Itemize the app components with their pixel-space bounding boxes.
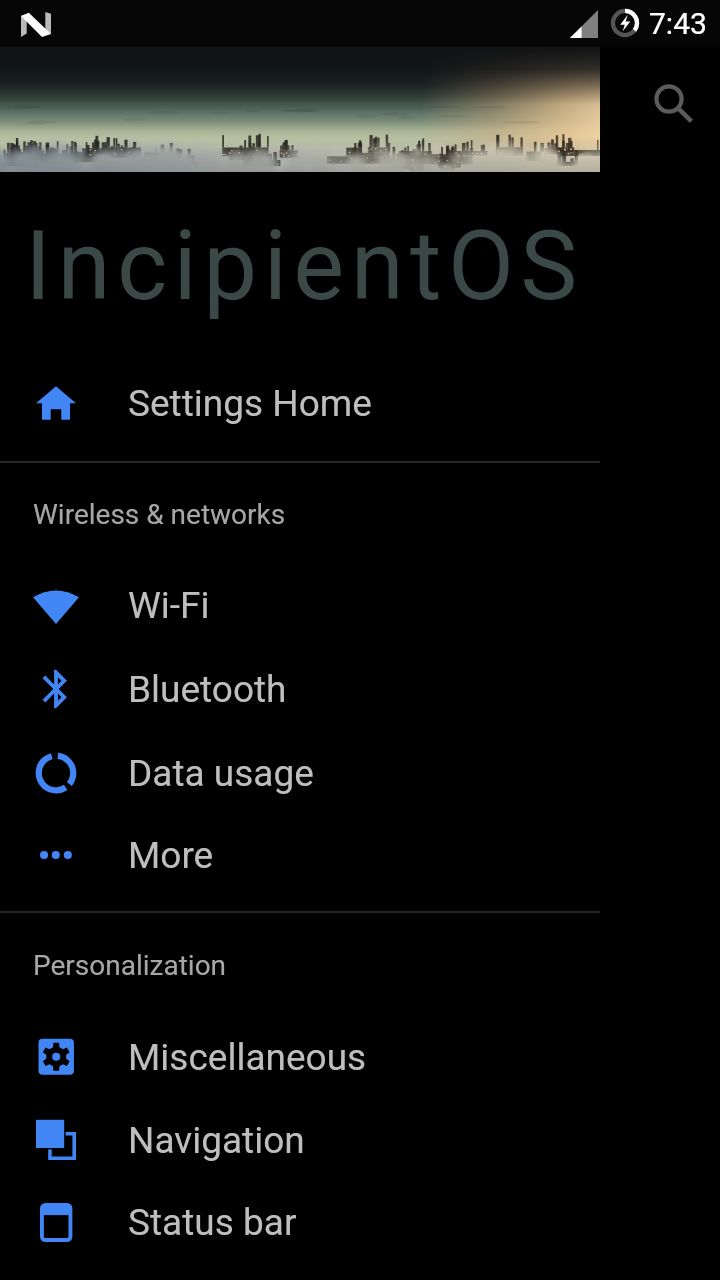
staticText: Bluetooth [128,668,287,711]
staticText: Personalization [33,949,227,982]
button[interactable]: More [0,814,600,896]
staticText: Data usage [128,752,314,795]
button[interactable]: Wi-Fi [0,564,600,646]
staticText: IncipientOS [25,210,584,323]
staticText: Wireless & networks [33,498,286,531]
button[interactable]: Data usage [0,732,600,814]
button[interactable]: Bluetooth [0,648,600,730]
button[interactable]: Settings Home [0,362,600,444]
button[interactable]: Miscellaneous [0,1016,600,1098]
button[interactable]: Navigation [0,1099,600,1181]
button[interactable]: Status bar [0,1181,600,1263]
staticText: 7:43 [649,6,707,41]
staticText: Status bar [128,1201,297,1244]
staticText: Miscellaneous [128,1036,367,1079]
staticText: Wi-Fi [128,584,210,627]
staticText: Navigation [128,1119,305,1162]
button[interactable]: Search [643,74,691,122]
staticText: More [128,834,214,877]
staticText: Settings Home [128,382,372,425]
